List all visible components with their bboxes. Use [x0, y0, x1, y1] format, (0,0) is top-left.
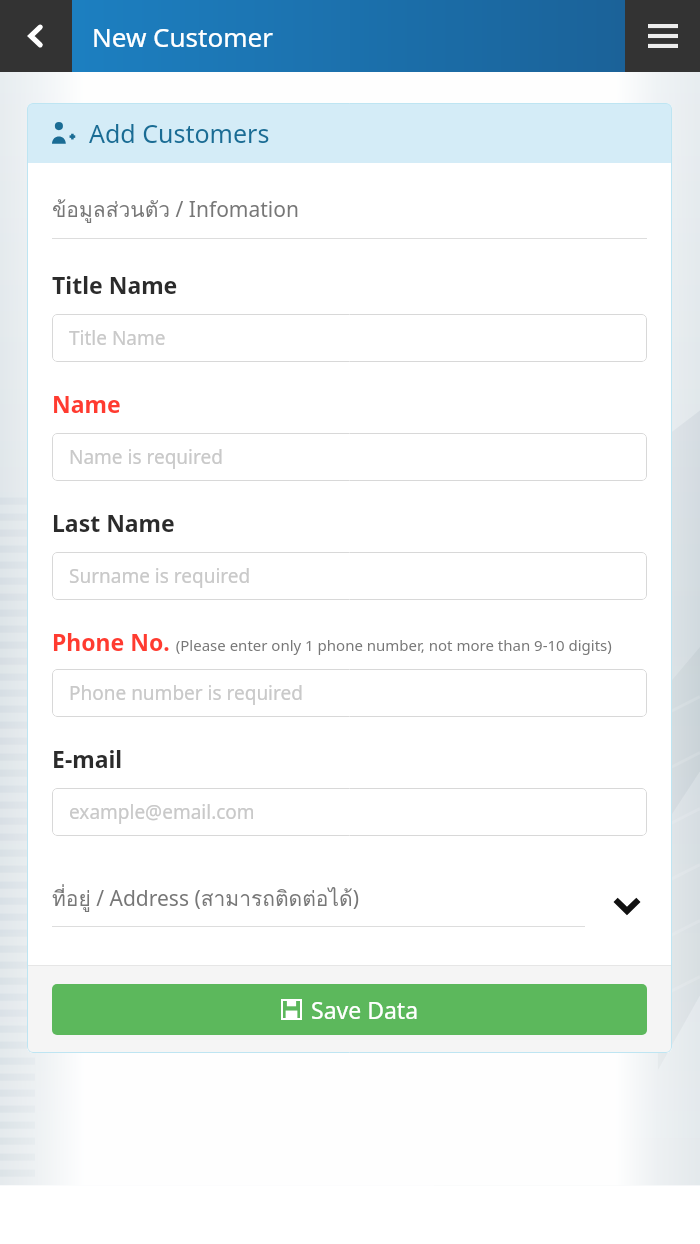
- staticText: Last Name: [52, 507, 175, 538]
- button[interactable]: Save Data: [52, 984, 647, 1035]
- staticText: Phone number is required: [69, 680, 303, 706]
- staticText: Name is required: [69, 444, 223, 470]
- staticText: New Customer: [92, 19, 273, 54]
- button[interactable]: example@email.com: [52, 788, 647, 836]
- button[interactable]: Back: [0, 0, 72, 72]
- other: Expand address: [607, 885, 647, 925]
- staticText: ข้อมูลส่วนตัว / Infomation: [52, 193, 299, 226]
- staticText: example@email.com: [69, 799, 255, 825]
- staticText: Title Name: [52, 269, 178, 300]
- staticText: Phone No. (Please enter only 1 phone num…: [52, 626, 612, 657]
- staticText: E-mail: [52, 743, 123, 774]
- button[interactable]: Menu: [625, 0, 700, 72]
- button[interactable]: ที่อยู่ / Address (สามารถติดต่อได้): [52, 882, 647, 927]
- staticText: Save Data: [311, 994, 419, 1025]
- staticText: Surname is required: [69, 563, 251, 589]
- staticText: Add Customers: [89, 116, 270, 150]
- staticText: Name: [52, 388, 121, 419]
- button[interactable]: Phone number is required: [52, 669, 647, 717]
- button[interactable]: Title Name: [52, 314, 647, 362]
- staticText: ที่อยู่ / Address (สามารถติดต่อได้): [52, 882, 359, 915]
- button[interactable]: Name is required: [52, 433, 647, 481]
- staticText: Title Name: [69, 325, 166, 351]
- button[interactable]: Surname is required: [52, 552, 647, 600]
